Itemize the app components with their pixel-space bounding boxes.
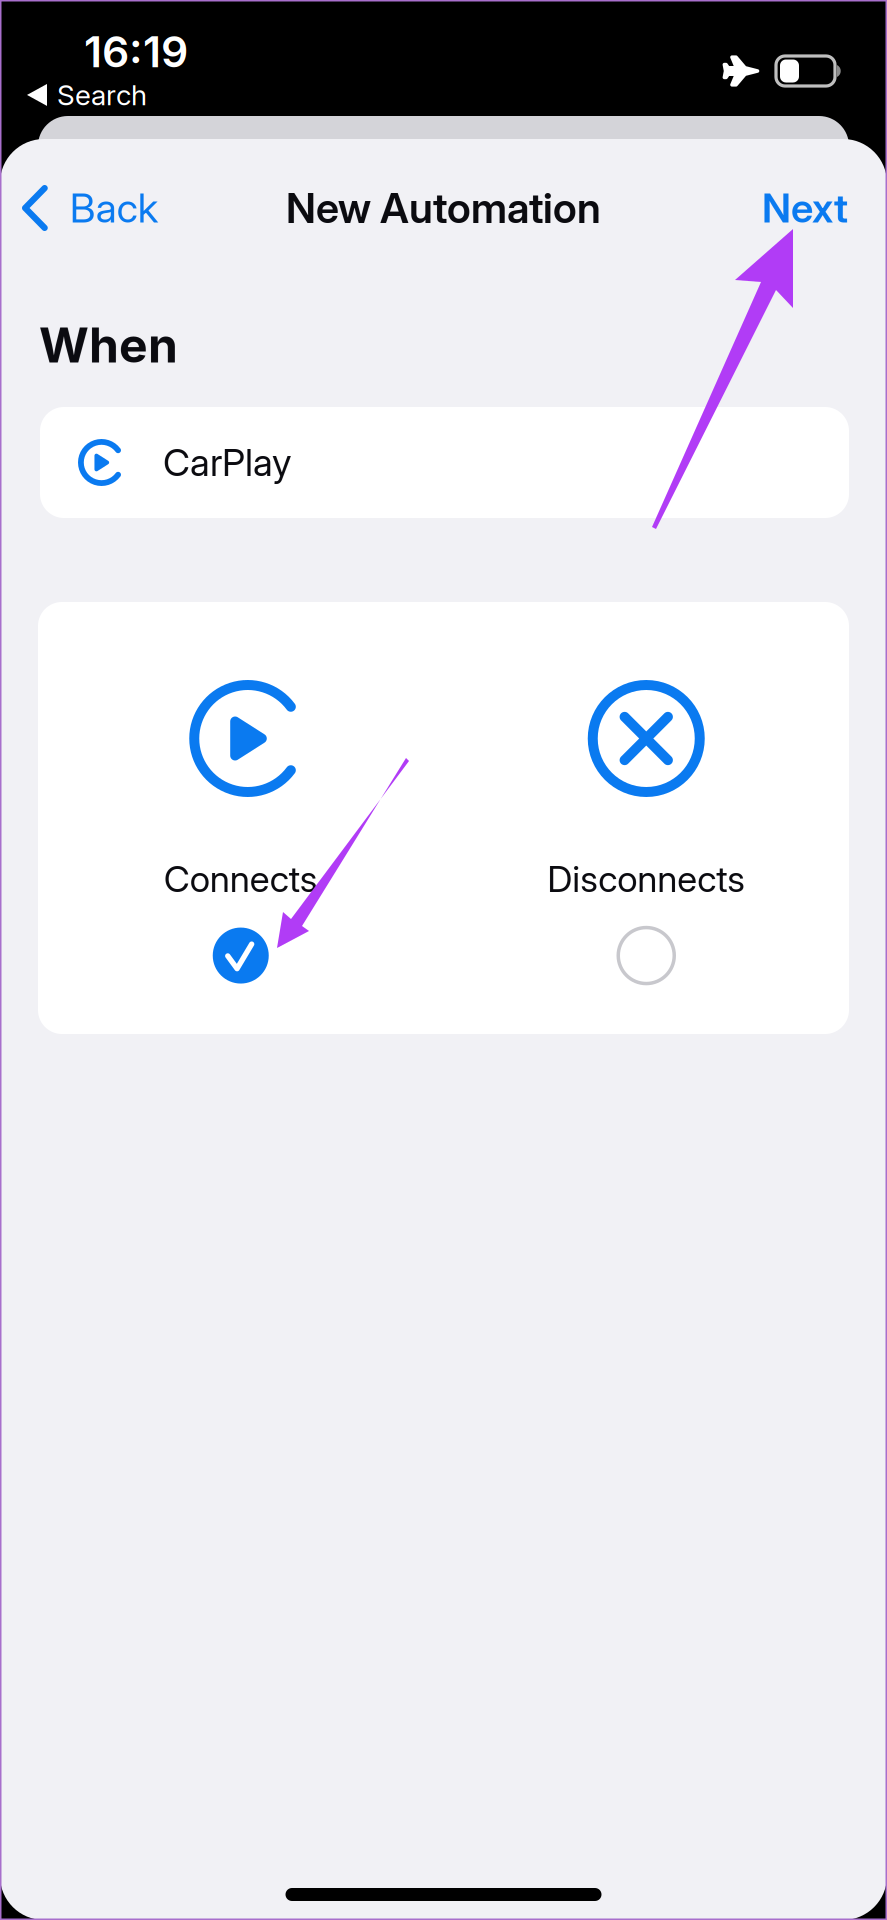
staticText: New Automation bbox=[286, 183, 601, 233]
staticText: Next bbox=[762, 184, 848, 232]
button[interactable]: Disconnects bbox=[443, 602, 849, 1034]
staticText: Connects bbox=[164, 857, 318, 901]
staticText: Disconnects bbox=[547, 857, 745, 901]
staticText: Back bbox=[70, 184, 158, 232]
staticText: Search bbox=[57, 78, 147, 112]
button[interactable]: CarPlay bbox=[40, 407, 849, 518]
staticText: 16:19 bbox=[84, 26, 188, 78]
staticText: When bbox=[39, 316, 178, 374]
button[interactable]: Back bbox=[0, 168, 176, 248]
button[interactable]: Connects bbox=[38, 602, 443, 1034]
staticText: CarPlay bbox=[163, 440, 292, 485]
button[interactable]: Next bbox=[742, 168, 868, 248]
